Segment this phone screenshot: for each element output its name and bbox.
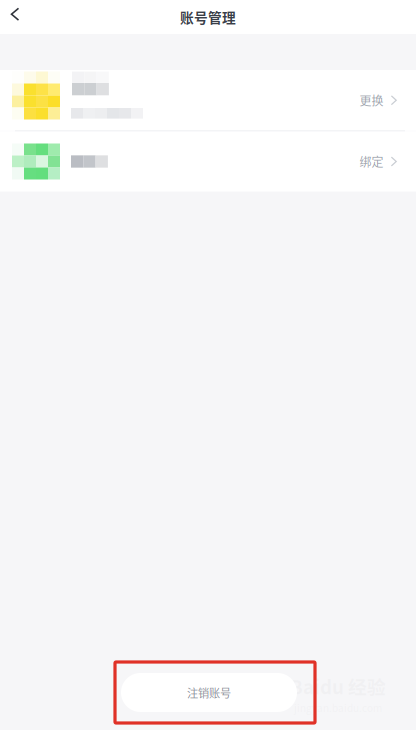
button[interactable]: 绑定 <box>0 131 416 191</box>
staticText: Baidu 经验 <box>290 672 386 699</box>
button[interactable]: 更换 <box>0 70 416 130</box>
staticText: 账号管理 <box>180 7 236 27</box>
button[interactable]: 注销账号 <box>121 673 297 712</box>
staticText: jingyan.baidu.com <box>294 700 382 715</box>
button[interactable]: Back <box>0 0 38 34</box>
staticText: 注销账号 <box>187 684 231 701</box>
staticText: 更换 <box>360 92 384 109</box>
staticText: 绑定 <box>360 153 384 170</box>
